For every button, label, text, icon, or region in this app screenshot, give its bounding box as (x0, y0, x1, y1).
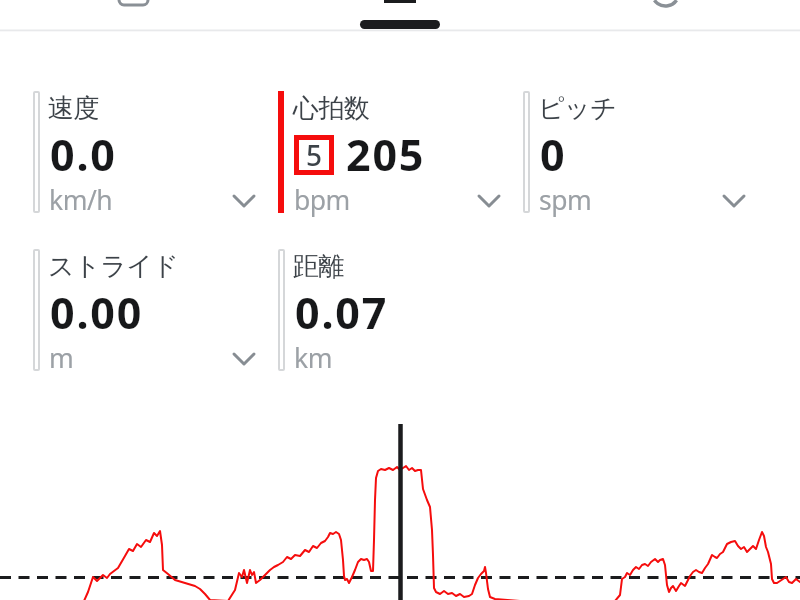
staticText: bpm (294, 182, 350, 218)
button[interactable]: ストライド (33, 248, 255, 373)
button[interactable]: 距離 (278, 248, 500, 373)
button[interactable] (0, 0, 266, 30)
button[interactable]: ピッチ (523, 90, 745, 215)
staticText: m (49, 340, 74, 376)
staticText: 0.0 (50, 125, 117, 184)
staticText: 5 (306, 136, 323, 174)
button[interactable]: 心拍数 (278, 90, 500, 215)
staticText: 0.00 (50, 283, 144, 342)
staticText: 距離 (293, 250, 344, 283)
button[interactable] (266, 0, 533, 30)
staticText: 0.07 (295, 283, 389, 342)
staticText: km (294, 340, 332, 376)
staticText: 205 (346, 125, 426, 184)
staticText: ピッチ (538, 92, 617, 125)
staticText: ストライド (48, 250, 179, 283)
staticText: 心拍数 (293, 92, 370, 125)
button[interactable] (533, 0, 800, 30)
staticText: spm (539, 182, 592, 218)
staticText: km/h (49, 182, 113, 218)
staticText: 0 (540, 125, 567, 184)
staticText: 速度 (48, 92, 99, 125)
button[interactable]: 速度 (33, 90, 255, 215)
